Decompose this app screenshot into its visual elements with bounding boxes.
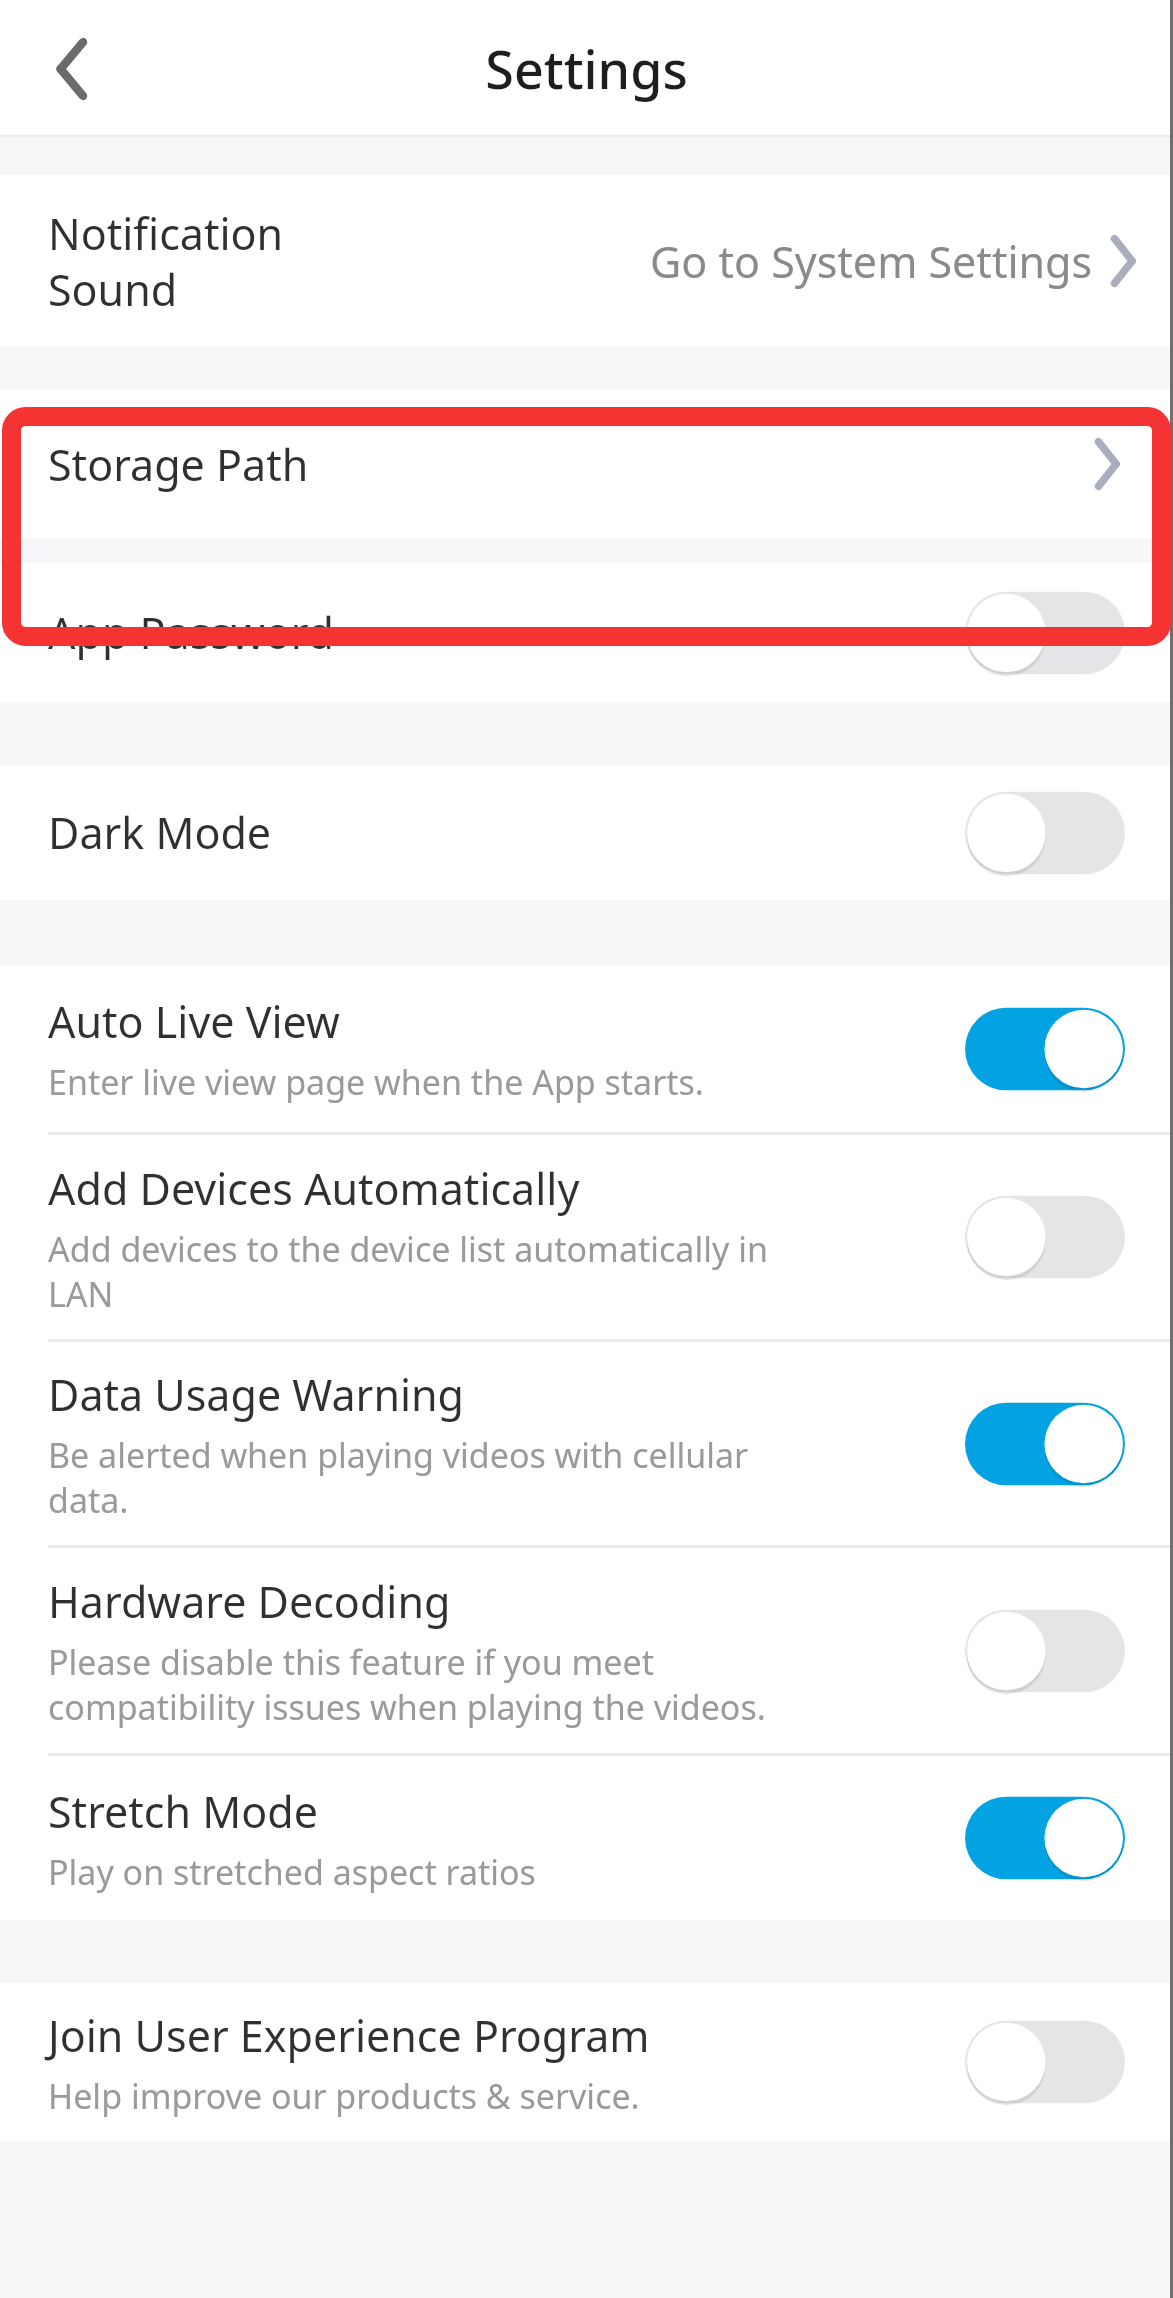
staticText: Settings bbox=[0, 33, 1173, 104]
button[interactable]: Dark Mode bbox=[965, 785, 1125, 881]
staticText: Play on stretched aspect ratios bbox=[48, 1849, 536, 1895]
button[interactable]: Add Devices Automatically bbox=[0, 1135, 1173, 1339]
staticText: App Password bbox=[48, 603, 335, 662]
staticText: Hardware Decoding bbox=[48, 1572, 451, 1631]
staticText: Storage Path bbox=[48, 435, 309, 494]
button[interactable]: App Password bbox=[0, 563, 1173, 702]
button[interactable]: Stretch Mode bbox=[0, 1756, 1173, 1920]
staticText: Enter live view page when the App starts… bbox=[48, 1059, 704, 1105]
staticText: Notification Sound bbox=[48, 204, 284, 319]
button[interactable]: Stretch Mode bbox=[965, 1790, 1125, 1886]
staticText: Be alerted when playing videos with cell… bbox=[48, 1432, 749, 1522]
staticText: Auto Live View bbox=[48, 992, 340, 1051]
button[interactable]: Data Usage Warning bbox=[965, 1396, 1125, 1492]
staticText: Stretch Mode bbox=[48, 1782, 318, 1841]
button[interactable]: Notification Sound bbox=[0, 175, 1173, 347]
staticText: Data Usage Warning bbox=[48, 1365, 465, 1424]
button[interactable]: Hardware Decoding bbox=[0, 1548, 1173, 1753]
button[interactable]: Add Devices Automatically bbox=[965, 1189, 1125, 1285]
button[interactable]: Back bbox=[28, 19, 114, 119]
button[interactable]: App Password bbox=[965, 585, 1125, 681]
button[interactable]: Join User Experience Program bbox=[965, 2014, 1125, 2110]
staticText: Join User Experience Program bbox=[48, 2006, 650, 2065]
button[interactable]: Dark Mode bbox=[0, 765, 1173, 900]
staticText: Help improve our products & service. bbox=[48, 2073, 640, 2119]
button[interactable]: Auto Live View bbox=[0, 965, 1173, 1132]
button[interactable]: Storage Path bbox=[0, 389, 1173, 539]
button[interactable]: Hardware Decoding bbox=[965, 1603, 1125, 1699]
staticText: Add Devices Automatically bbox=[48, 1159, 580, 1218]
button[interactable]: Data Usage Warning bbox=[0, 1342, 1173, 1545]
staticText: Please disable this feature if you meet … bbox=[48, 1639, 766, 1729]
button[interactable]: Auto Live View bbox=[965, 1001, 1125, 1097]
staticText: Add devices to the device list automatic… bbox=[48, 1226, 768, 1316]
staticText: Dark Mode bbox=[48, 803, 272, 862]
button[interactable]: Join User Experience Program bbox=[0, 1983, 1173, 2141]
staticText: Go to System Settings bbox=[650, 232, 1093, 291]
